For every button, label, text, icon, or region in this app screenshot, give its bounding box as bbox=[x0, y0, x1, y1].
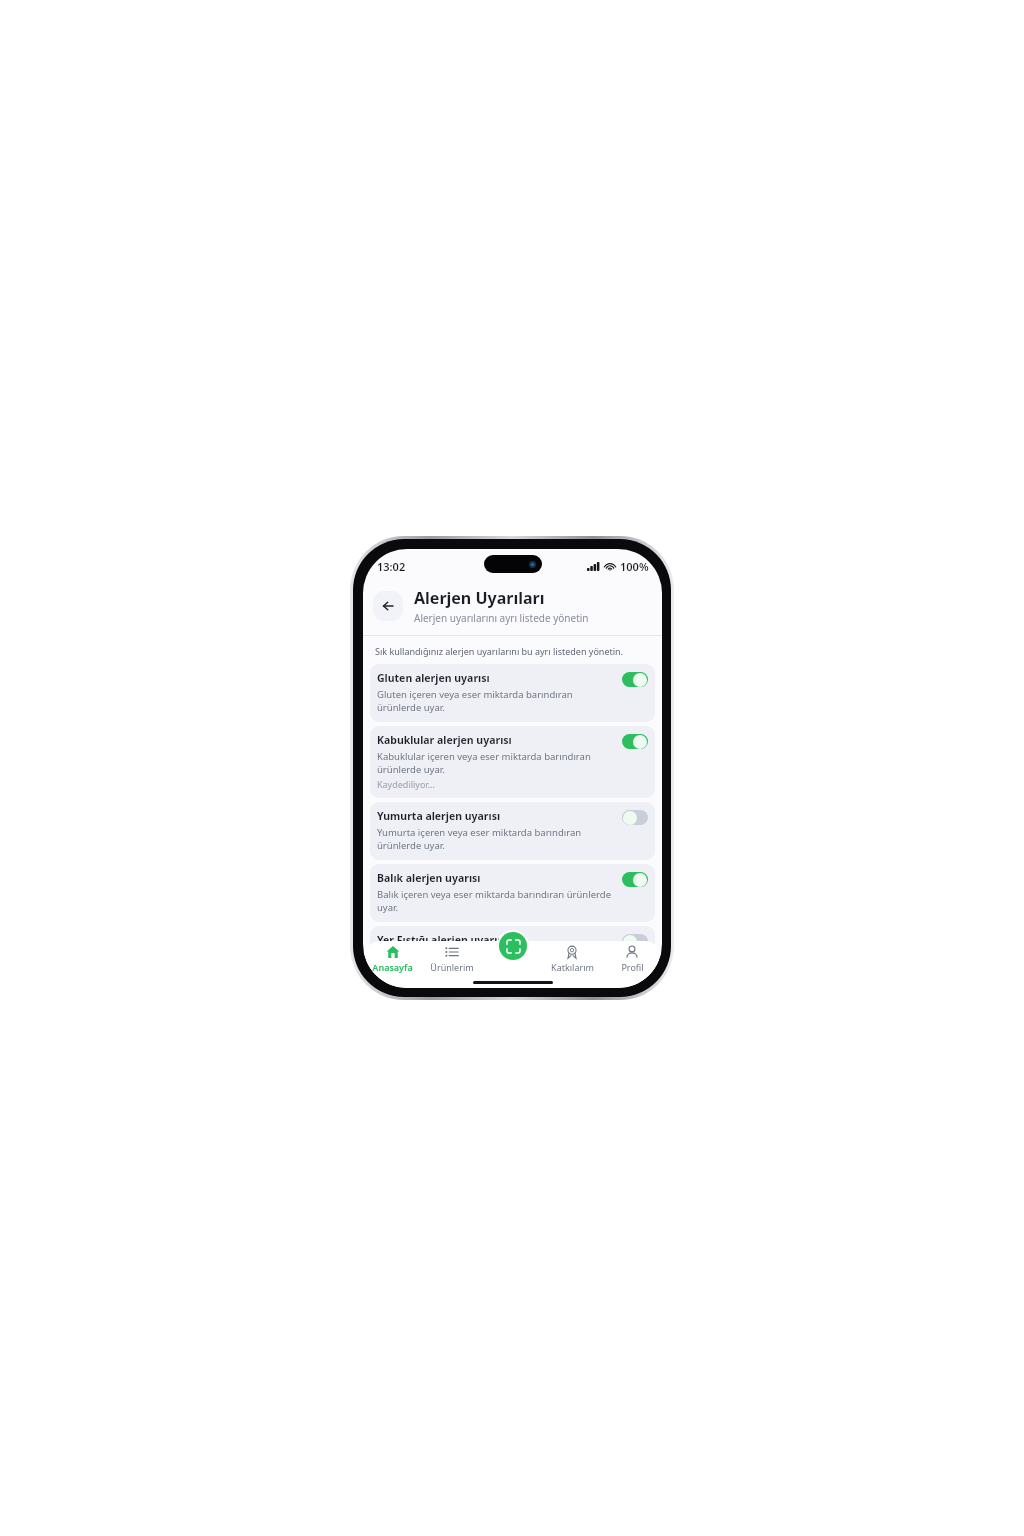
staticText: Katkılarım bbox=[551, 961, 594, 973]
staticText: Gluten alerjen uyarısı bbox=[377, 671, 490, 685]
staticText: Yumurta alerjen uyarısı bbox=[377, 809, 501, 823]
button[interactable]: Yumurta alerjen uyarısı bbox=[370, 802, 655, 860]
staticText: 100% bbox=[620, 559, 649, 574]
button[interactable]: Açık bbox=[622, 672, 648, 687]
button[interactable]: Ürünlerim bbox=[422, 941, 482, 977]
button[interactable]: Yer Fıstığı alerjen uyarısı bbox=[370, 926, 655, 984]
button[interactable]: Açık bbox=[622, 872, 648, 887]
button[interactable]: Kabuklular alerjen uyarısı bbox=[370, 726, 655, 798]
staticText: Ürünlerim bbox=[430, 961, 474, 973]
staticText: Anasayfa bbox=[372, 961, 413, 973]
staticText: Balık alerjen uyarısı bbox=[377, 871, 481, 885]
button[interactable]: Back bbox=[373, 591, 403, 621]
staticText: Profil bbox=[621, 961, 644, 973]
button[interactable]: Açık bbox=[622, 734, 648, 749]
button[interactable]: Kapalı bbox=[622, 810, 648, 825]
button[interactable]: Tara bbox=[499, 932, 527, 960]
staticText: Balık içeren veya eser miktarda barındır… bbox=[377, 888, 618, 914]
staticText: Sık kullandığınız alerjen uyarılarını bu… bbox=[375, 645, 624, 657]
button[interactable]: Profil bbox=[602, 941, 662, 977]
button[interactable]: Katkılarım bbox=[542, 941, 602, 977]
staticText: Kabuklular alerjen uyarısı bbox=[377, 733, 512, 747]
button[interactable]: Balık alerjen uyarısı bbox=[370, 864, 655, 922]
staticText: Yer Fıstığı alerjen uyarısı bbox=[377, 933, 506, 947]
staticText: Kaydediliyor... bbox=[377, 778, 435, 790]
button[interactable]: Anasayfa bbox=[363, 941, 422, 977]
staticText: Alerjen Uyarıları bbox=[414, 587, 545, 609]
staticText: Gluten içeren veya eser miktarda barındı… bbox=[377, 688, 618, 714]
button[interactable]: Gluten alerjen uyarısı bbox=[370, 664, 655, 722]
staticText: 13:02 bbox=[377, 559, 406, 574]
staticText: Yumurta içeren veya eser miktarda barınd… bbox=[377, 826, 618, 852]
staticText: Yer Fıstığı içeren veya eser miktarda ba… bbox=[377, 950, 618, 976]
staticText: Kabuklular içeren veya eser miktarda bar… bbox=[377, 750, 618, 776]
staticText: Alerjen uyarılarını ayrı listede yönetin bbox=[414, 611, 589, 625]
button[interactable]: Kapalı bbox=[622, 934, 648, 949]
